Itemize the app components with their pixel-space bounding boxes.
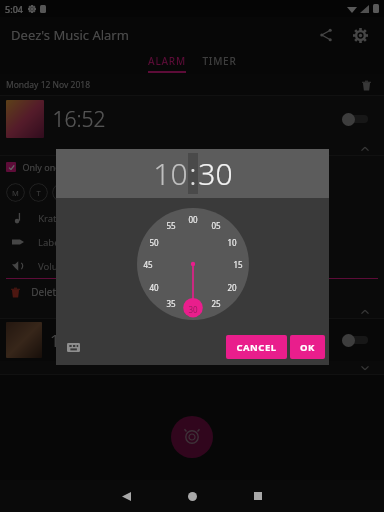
staticText: 55	[166, 220, 176, 231]
staticText: Delete	[31, 285, 62, 299]
staticText: TIMER	[202, 54, 237, 68]
button[interactable]	[0, 305, 384, 319]
button[interactable]: OK	[290, 335, 325, 359]
button[interactable]: 13:00	[0, 319, 384, 361]
staticText: 45	[143, 259, 153, 270]
button[interactable]: Label	[12, 230, 384, 254]
button[interactable]	[0, 361, 384, 375]
staticText: :	[189, 153, 197, 194]
button[interactable]: ALARM	[148, 54, 186, 73]
button[interactable]: Volume	[12, 254, 384, 278]
staticText: 16:52	[52, 105, 106, 134]
staticText: Only once	[22, 161, 65, 173]
button[interactable]: T	[29, 183, 48, 202]
staticText: 15	[233, 259, 243, 270]
staticText: 40	[149, 282, 159, 293]
staticText: 00	[188, 214, 198, 225]
button[interactable]	[0, 142, 384, 156]
staticText: 50	[149, 237, 159, 248]
button[interactable]: Recent apps	[238, 480, 278, 512]
button[interactable]: 10	[153, 153, 188, 194]
staticText: Kratos	[38, 212, 67, 225]
staticText: ALARM	[148, 54, 186, 68]
staticText: 5:04	[5, 3, 23, 15]
staticText: 13:00	[50, 329, 93, 352]
staticText: 10	[153, 153, 188, 194]
button[interactable]: Add alarm	[171, 416, 213, 458]
staticText: 30	[188, 304, 198, 315]
button[interactable]: 16:52	[0, 96, 384, 142]
staticText: Label	[38, 236, 62, 249]
staticText: Volume	[38, 260, 72, 273]
button[interactable]: T	[75, 183, 94, 202]
button[interactable]: Back	[106, 480, 146, 512]
staticText: 20	[227, 282, 237, 293]
staticText: 10	[227, 237, 237, 248]
staticText: CANCEL	[236, 341, 277, 354]
button[interactable]: Switch to keyboard input	[62, 336, 84, 358]
staticText: 35	[166, 298, 176, 309]
button[interactable]: S	[144, 183, 163, 202]
button[interactable]: F	[98, 183, 117, 202]
staticText: T	[36, 188, 41, 198]
button[interactable]: Home	[172, 480, 212, 512]
staticText: Deez's Music Alarm	[11, 26, 129, 44]
button[interactable]: S	[121, 183, 140, 202]
staticText: 05	[211, 220, 221, 231]
button[interactable]: W	[52, 183, 71, 202]
button[interactable]: 30	[198, 153, 233, 194]
button[interactable]: Share	[312, 21, 340, 49]
button[interactable]: M	[6, 183, 25, 202]
staticText: OK	[300, 341, 315, 354]
button[interactable]: CANCEL	[226, 335, 287, 359]
staticText: Monday 12 Nov 2018	[6, 79, 90, 91]
button[interactable]: Kratos	[12, 206, 384, 230]
button[interactable]: Settings	[346, 21, 374, 49]
staticText: 30	[198, 153, 233, 194]
button[interactable]	[342, 112, 368, 126]
button[interactable]: TIMER	[202, 54, 237, 68]
button[interactable]: Only once	[6, 156, 384, 178]
button[interactable]	[342, 333, 368, 347]
button[interactable]: Delete	[10, 279, 384, 305]
staticText: M	[12, 188, 19, 198]
staticText: 25	[211, 298, 221, 309]
button[interactable]: Delete day	[356, 75, 376, 95]
